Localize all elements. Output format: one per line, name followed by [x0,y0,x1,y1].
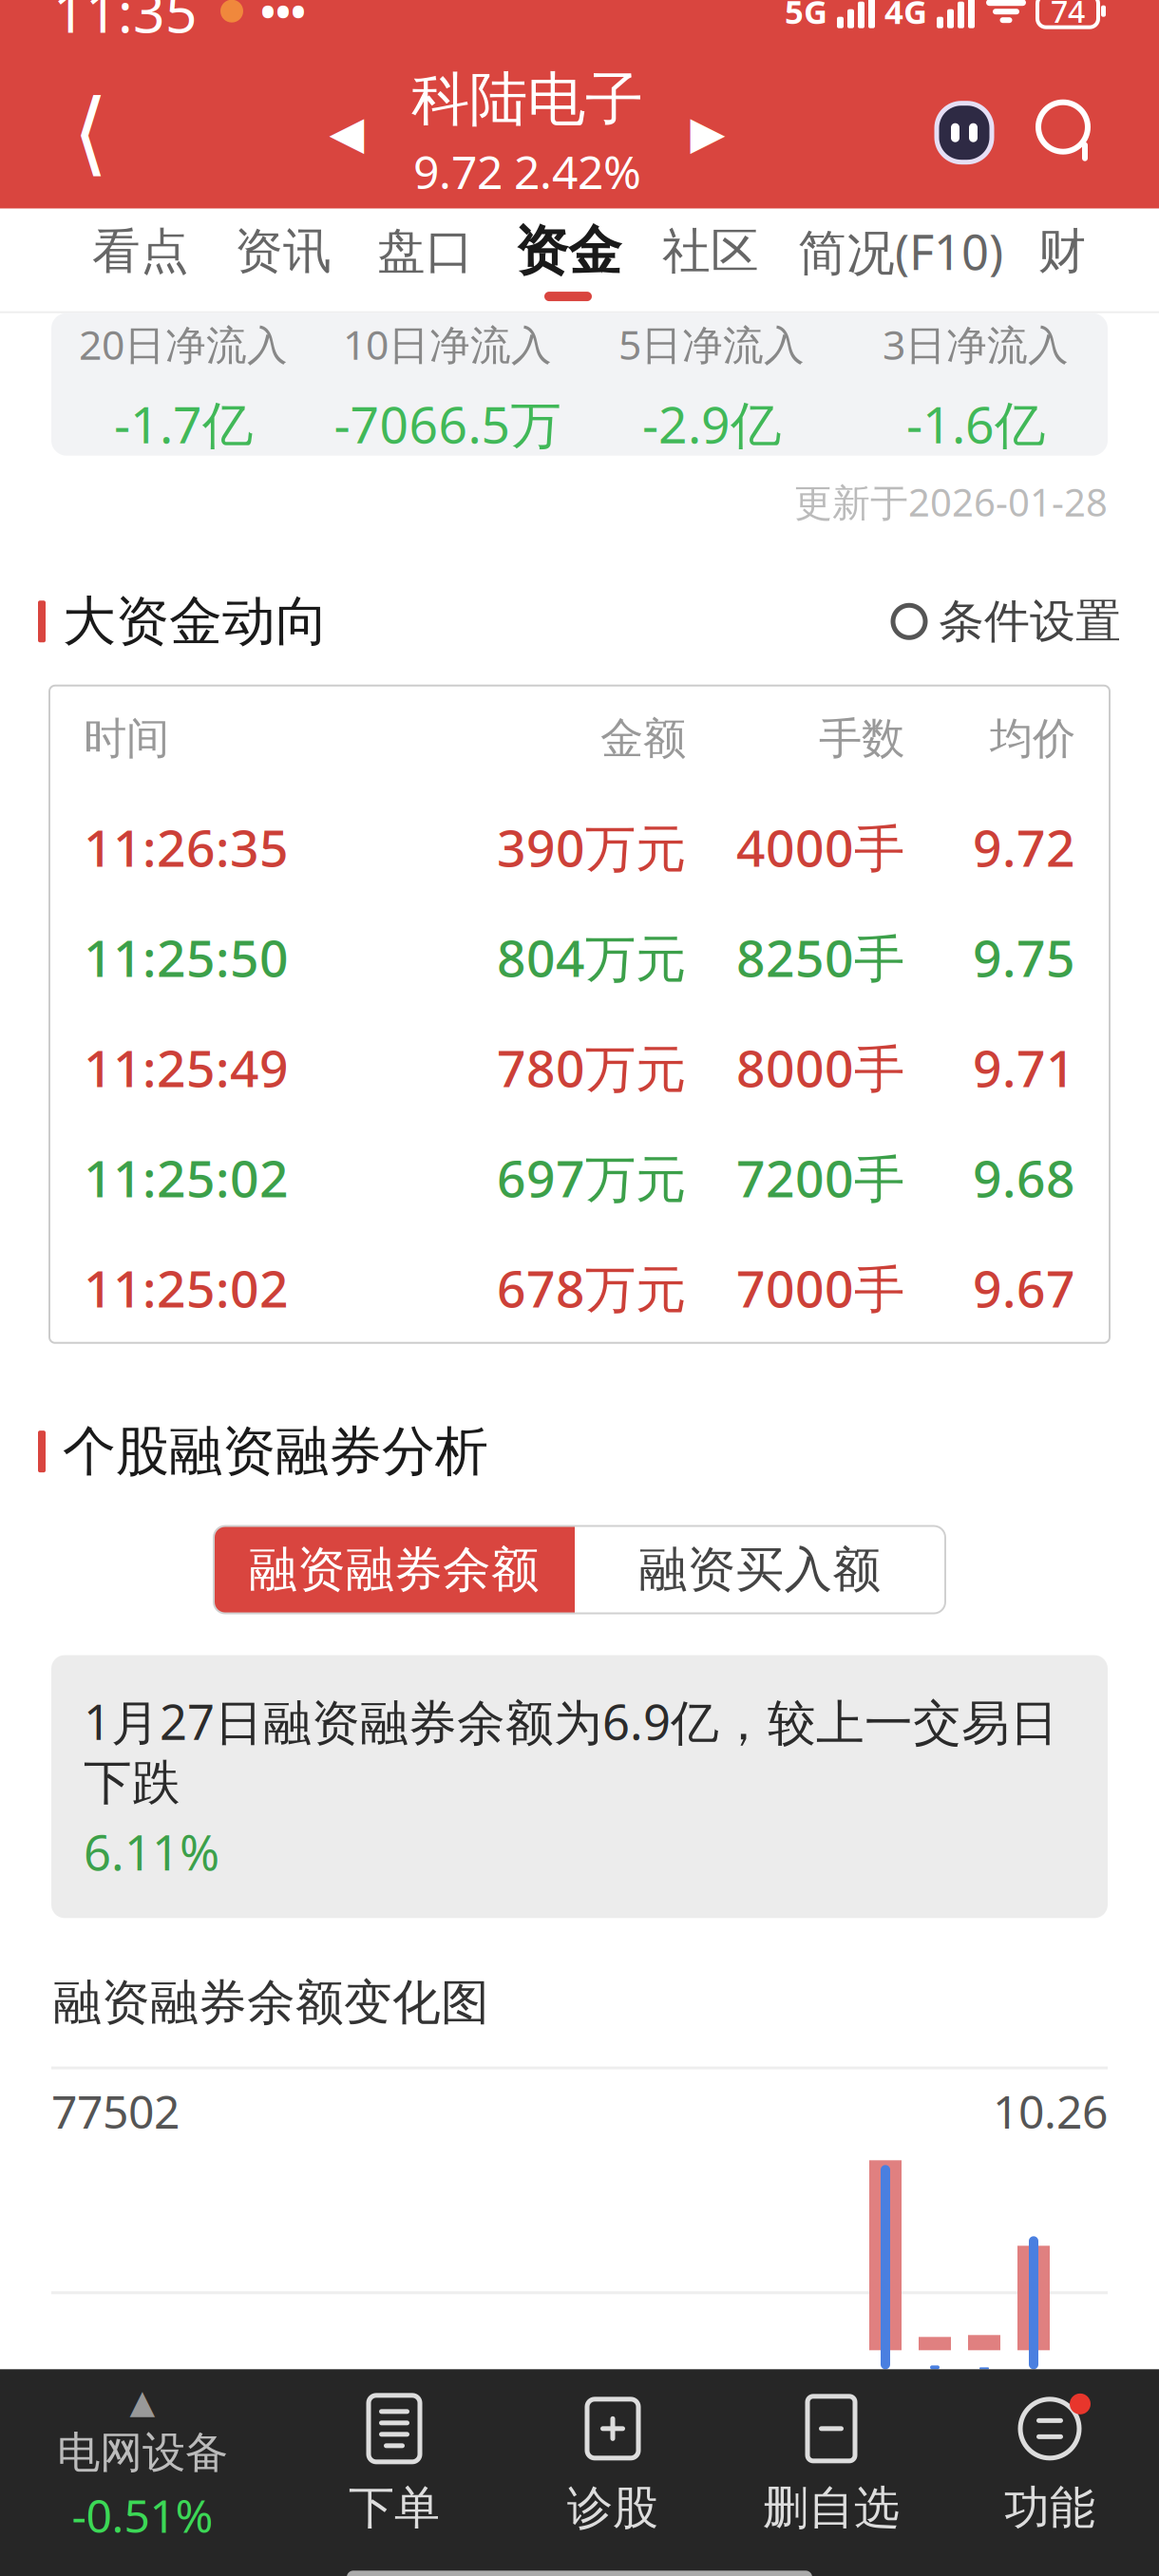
button[interactable]: 下单 [285,2369,503,2559]
staticText: 8250手 [736,924,904,991]
staticText: -1.6亿 [906,390,1045,457]
staticText: 11:26:35 [84,813,289,881]
button[interactable]: 融资买入额 [575,1526,945,1613]
staticText: 9.75 [973,924,1075,991]
button[interactable]: 资金 [497,209,639,311]
staticText: 资讯 [235,222,332,281]
button[interactable]: AI assistant [912,80,1016,185]
staticText: 融资融券余额变化图 [53,1973,489,2032]
button[interactable]: 功能 [940,2369,1159,2559]
button[interactable]: 条件设置 [893,584,1121,659]
staticText: 大资金动向 [63,589,329,654]
staticText: 更新于2026-01-28 [794,477,1108,527]
staticText: 9.67 [973,1254,1075,1321]
button[interactable]: Search [1016,80,1121,185]
button[interactable]: ▲ [0,2369,285,2559]
staticText: 4G [884,0,927,33]
staticText: 盘口 [377,222,474,281]
staticText: 诊股 [567,2480,658,2536]
staticText: 功能 [1004,2480,1095,2536]
staticText: 77502 [51,2081,180,2141]
staticText: 6.11% [84,1820,219,1884]
staticText: 资金 [515,219,621,284]
staticText: 10.26 [993,2081,1108,2141]
staticText: 11:25:50 [84,924,289,991]
staticText: 9.72 2.42% [413,141,641,202]
button[interactable]: Next stock [670,80,746,185]
staticText: -2.9亿 [642,390,781,457]
staticText: 删自选 [763,2480,900,2536]
staticText: 20日净流入 [79,317,288,371]
staticText: 11:25:02 [84,1144,289,1211]
staticText: 780万元 [497,1034,686,1101]
button[interactable]: 删自选 [722,2369,940,2559]
staticText: 678万元 [497,1254,686,1321]
staticText: ••• [260,0,306,38]
staticText: ⟨ [73,81,108,184]
staticText: 1月27日融资融券余额为6.9亿，较上一交易日下跌 [84,1689,1058,1812]
button[interactable]: 简况(F10) [782,209,1019,311]
staticText: 金额 [600,712,686,765]
staticText: 9.71 [973,1034,1075,1101]
staticText: 10日净流入 [343,317,552,371]
staticText: ▶ [690,107,725,159]
staticText: 697万元 [497,1144,686,1211]
staticText: 社区 [662,222,759,281]
button[interactable]: 看点 [69,209,212,311]
staticText: 11:35 [53,0,198,48]
staticText: 下单 [349,2480,440,2536]
staticText: 4000手 [736,813,904,881]
staticText: -7066.5万 [334,390,561,457]
staticText: -0.51% [72,2485,213,2545]
staticText: 7200手 [736,1144,904,1211]
staticText: ◀ [329,107,364,159]
staticText: 条件设置 [939,593,1121,650]
staticText: 科陆电子 [411,64,643,135]
staticText: 时间 [84,712,169,765]
staticText: 5G [785,0,827,33]
staticText: 11:25:02 [84,1254,289,1321]
button[interactable]: 资讯 [212,209,354,311]
button[interactable]: Back [38,80,142,185]
staticText: 7000手 [736,1254,904,1321]
staticText: 5日净流入 [618,317,805,371]
staticText: 融资买入额 [639,1540,881,1599]
button[interactable]: 社区 [639,209,782,311]
staticText: 个股融资融券分析 [63,1419,488,1484]
staticText: 电网设备 [57,2426,228,2479]
staticText: -1.7亿 [114,390,253,457]
button[interactable]: Previous stock [309,80,385,185]
staticText: 9.68 [973,1144,1075,1211]
staticText: ▲ [130,2383,155,2420]
button[interactable]: 财 [1019,209,1105,311]
staticText: 融资融券余额 [249,1540,540,1599]
staticText: 财 [1038,222,1086,281]
staticText: 简况(F10) [798,219,1003,283]
staticText: 390万元 [497,813,686,881]
staticText: 8000手 [736,1034,904,1101]
staticText: 均价 [990,712,1075,765]
staticText: 看点 [92,222,189,281]
staticText: 手数 [819,712,904,765]
staticText: 804万元 [497,924,686,991]
staticText: 9.72 [973,813,1075,881]
staticText: 3日净流入 [883,317,1069,371]
staticText: 74 [1051,0,1085,31]
button[interactable]: 诊股 [503,2369,722,2559]
staticText: 11:25:49 [84,1034,289,1101]
button[interactable]: 盘口 [354,209,497,311]
button[interactable]: 融资融券余额 [214,1526,575,1613]
